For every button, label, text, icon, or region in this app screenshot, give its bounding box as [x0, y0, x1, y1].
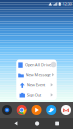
- button[interactable]: Recent apps: [53, 120, 61, 127]
- button[interactable]: Sign Out: [16, 90, 57, 100]
- button[interactable]: Back: [12, 119, 21, 128]
- button[interactable]: New Message: [16, 70, 57, 80]
- staticText: Sign Out: [27, 92, 41, 97]
- button[interactable]: Play Music: [31, 105, 41, 115]
- staticText: Open All Drive: [25, 62, 51, 67]
- button[interactable]: Camera: [2, 105, 12, 115]
- button[interactable]: Chrome: [17, 105, 27, 115]
- staticText: New Event: [27, 82, 45, 87]
- staticText: New Message: [25, 72, 50, 77]
- button[interactable]: Gmail: [61, 105, 71, 115]
- button[interactable]: Twitter: [46, 105, 56, 115]
- button[interactable]: Home: [33, 119, 41, 128]
- button[interactable]: New Event: [16, 80, 57, 90]
- button[interactable]: Open All Drive: [16, 59, 57, 70]
- staticText: 12:30: [62, 1, 71, 7]
